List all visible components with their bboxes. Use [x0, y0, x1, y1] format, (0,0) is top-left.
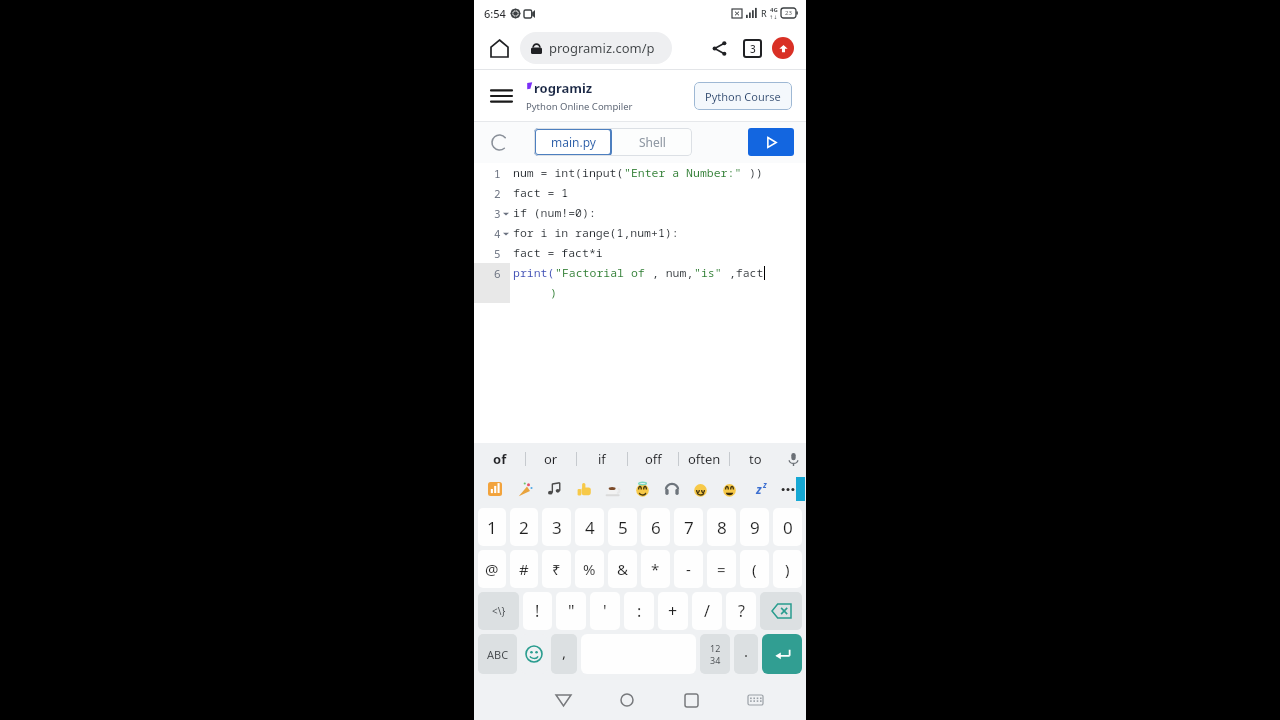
button[interactable]: Emoji	[773, 475, 802, 503]
button[interactable]: Emoji	[744, 475, 773, 503]
button[interactable]: Python Course	[694, 82, 792, 110]
button[interactable]: Home	[595, 680, 659, 720]
button[interactable]: Back	[531, 680, 595, 720]
button[interactable]: 3	[542, 508, 571, 546]
button[interactable]: Emoji	[540, 475, 570, 503]
button[interactable]: 9	[740, 508, 769, 546]
button[interactable]: "	[556, 592, 586, 630]
staticText: fact = 1	[513, 185, 569, 201]
button[interactable]: %	[575, 550, 604, 588]
button[interactable]: main.py	[534, 128, 612, 156]
button[interactable]: Emoji	[715, 475, 744, 503]
staticText: programiz.com/p	[549, 39, 655, 57]
staticText: !	[535, 600, 540, 622]
button[interactable]: (	[740, 550, 769, 588]
staticText: 23	[785, 9, 792, 17]
button[interactable]: 0	[773, 508, 802, 546]
button[interactable]: 7	[674, 508, 703, 546]
button[interactable]: Menu	[488, 83, 514, 109]
button[interactable]: #	[510, 550, 538, 588]
button[interactable]: ABC	[478, 634, 517, 674]
button[interactable]: Emoji	[657, 475, 686, 503]
button[interactable]: Tabs	[743, 39, 762, 58]
button[interactable]: 4	[575, 508, 604, 546]
staticText: )	[550, 285, 557, 301]
button[interactable]: or	[526, 443, 576, 475]
button[interactable]: &	[608, 550, 637, 588]
button[interactable]: Share	[705, 34, 733, 62]
button[interactable]: !	[523, 592, 552, 630]
button[interactable]: 5	[608, 508, 637, 546]
staticText: )	[785, 559, 790, 579]
button[interactable]: Enter	[762, 634, 802, 674]
button[interactable]: Recents	[659, 680, 723, 720]
button[interactable]: '	[590, 592, 620, 630]
button[interactable]: Emoji	[686, 475, 715, 503]
button[interactable]: Home	[486, 35, 512, 61]
button[interactable]: =	[707, 550, 736, 588]
button[interactable]: Emoji	[510, 475, 540, 503]
staticText: 3	[494, 206, 501, 221]
staticText: %	[583, 559, 596, 579]
button[interactable]: *	[641, 550, 670, 588]
staticText: ,	[562, 642, 567, 662]
button[interactable]: Dark mode	[486, 129, 512, 155]
button[interactable]: /	[692, 592, 722, 630]
staticText: Python Course	[705, 89, 781, 104]
staticText: 9	[750, 516, 760, 539]
button[interactable]: @	[478, 550, 506, 588]
button[interactable]: Emoji keyboard	[521, 634, 547, 674]
button[interactable]: off	[628, 443, 678, 475]
button[interactable]: programiz.com/p	[520, 32, 672, 64]
button[interactable]: Emoji	[599, 475, 628, 503]
button[interactable]: )	[773, 550, 802, 588]
staticText: 3	[750, 42, 756, 56]
button[interactable]: Shell	[612, 128, 692, 156]
staticText: 4	[585, 516, 595, 539]
staticText: @	[485, 559, 499, 579]
button[interactable]: Voice input	[780, 443, 806, 475]
button[interactable]: of	[474, 443, 525, 475]
button[interactable]: 1	[478, 508, 506, 546]
other: Backspace	[772, 604, 791, 618]
staticText: -	[686, 559, 691, 579]
staticText: num = int(input(	[513, 165, 624, 181]
button[interactable]: -	[674, 550, 703, 588]
staticText: '	[603, 600, 607, 622]
button[interactable]: ?	[726, 592, 756, 630]
staticText: ,fact	[722, 265, 764, 281]
button[interactable]: .	[734, 634, 758, 674]
button[interactable]: 8	[707, 508, 736, 546]
staticText: 2	[494, 186, 501, 201]
button[interactable]: ₹	[542, 550, 571, 588]
button[interactable]: Emoji	[628, 475, 657, 503]
staticText: 4	[494, 226, 501, 241]
button[interactable]: to	[730, 443, 780, 475]
button[interactable]: often	[679, 443, 729, 475]
staticText: ?	[738, 600, 745, 622]
button[interactable]: :	[624, 592, 654, 630]
staticText: /	[704, 600, 710, 622]
staticText: ABC	[487, 647, 509, 662]
button[interactable]: Update	[772, 37, 794, 59]
button[interactable]: 6	[641, 508, 670, 546]
button[interactable]: <\}	[478, 592, 519, 630]
button[interactable]: Emoji	[480, 475, 510, 503]
button[interactable]: Emoji	[570, 475, 599, 503]
button[interactable]: 12	[700, 634, 730, 674]
staticText: "	[568, 600, 575, 622]
staticText: 6	[651, 516, 661, 539]
staticText: main.py	[551, 134, 596, 150]
button[interactable]: if	[577, 443, 627, 475]
button[interactable]: Backspace	[760, 592, 802, 630]
button[interactable]: +	[658, 592, 688, 630]
staticText: +	[668, 600, 678, 622]
other: Enter	[774, 646, 791, 663]
staticText: for i in range(1,num+1):	[513, 225, 679, 241]
button[interactable]: Hide keyboard	[723, 680, 787, 720]
button[interactable]: ,	[551, 634, 577, 674]
staticText: ↑↓	[769, 14, 778, 20]
button[interactable]: Run	[748, 128, 794, 156]
button[interactable]: 2	[510, 508, 538, 546]
